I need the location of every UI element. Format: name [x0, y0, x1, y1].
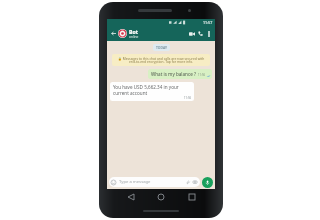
- staticText: 11:57: [203, 20, 213, 25]
- button[interactable]: You have USD 5,662.34 in your current ac…: [110, 82, 194, 101]
- button[interactable]: Recents: [185, 190, 199, 204]
- staticText: What is my balance ?: [151, 71, 196, 77]
- staticText: Bot: [129, 28, 138, 35]
- staticText: Type a message: [119, 179, 185, 185]
- staticText: You have USD 5,662.34 in your current ac…: [113, 84, 192, 96]
- button[interactable]: Video call: [187, 29, 196, 38]
- button[interactable]: More options: [205, 30, 212, 37]
- button[interactable]: Back: [124, 190, 138, 204]
- button[interactable]: What is my balance ?: [148, 69, 212, 79]
- button[interactable]: Type a message: [109, 177, 200, 187]
- button[interactable]: Camera: [192, 179, 198, 185]
- staticText: online: [129, 35, 139, 39]
- staticText: 🔒 Messages to this chat and calls are no…: [115, 56, 207, 64]
- button[interactable]: Back: [110, 30, 117, 37]
- button[interactable]: Voice message: [202, 177, 213, 188]
- staticText: 11:56: [198, 73, 206, 77]
- button[interactable]: Home: [154, 190, 168, 204]
- staticText: 11:56: [184, 96, 192, 100]
- button[interactable]: Call: [196, 29, 205, 38]
- button[interactable]: Attach: [185, 179, 191, 185]
- staticText: TODAY: [156, 45, 167, 50]
